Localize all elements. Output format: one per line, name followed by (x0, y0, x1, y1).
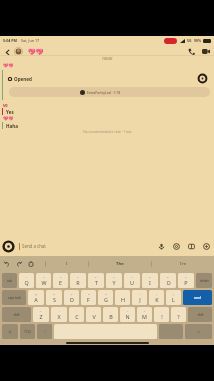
staticText: 5:04 PM (3, 38, 18, 43)
staticText: Z (39, 313, 43, 320)
staticText: 5G (187, 38, 192, 43)
button[interactable]: Audio call (186, 46, 197, 57)
staticText: L (172, 296, 175, 303)
staticText: Opened (14, 76, 32, 82)
button[interactable]: EetraParleyLad · 1:18 (9, 87, 210, 97)
staticText: M (142, 313, 147, 320)
button[interactable]: tab (2, 273, 17, 288)
staticText: V (92, 313, 96, 320)
staticText: : (93, 309, 94, 312)
staticText: ? (177, 313, 180, 320)
button[interactable]: I (46, 256, 88, 272)
button[interactable]: Yes (6, 108, 14, 115)
button[interactable]: Gallery (186, 241, 196, 251)
staticText: The (116, 261, 124, 267)
button[interactable]: Opened (8, 76, 32, 82)
button[interactable]: Redo (15, 260, 23, 268)
staticText: I (66, 261, 68, 267)
staticText: S (53, 296, 56, 303)
staticText: C (75, 313, 79, 320)
staticText: N (125, 313, 130, 320)
button[interactable]: ( (149, 290, 164, 305)
button[interactable]: 9 (160, 273, 176, 288)
staticText: & (105, 292, 107, 295)
staticText: ( (156, 292, 157, 295)
staticText: EetraParleyLad · 1:18 (87, 90, 121, 95)
button[interactable]: : (86, 307, 101, 322)
button[interactable]: 3 (53, 273, 68, 288)
button[interactable]: send (183, 290, 212, 305)
button[interactable]: 5 (88, 273, 104, 288)
button[interactable]: Camera (3, 241, 14, 252)
button[interactable]: # (46, 290, 62, 305)
button[interactable]: I'm (152, 256, 214, 272)
button[interactable]: @ (28, 290, 44, 305)
button[interactable]: 6 (106, 273, 122, 288)
button[interactable]: Reply with snap (198, 74, 207, 83)
button[interactable]: 7 (124, 273, 140, 288)
staticText: U (130, 279, 134, 286)
button[interactable]: - (115, 290, 130, 305)
staticText: ⌕ (44, 330, 46, 333)
button[interactable]: 0 (178, 273, 194, 288)
staticText: G (104, 296, 108, 303)
button[interactable]: ⌕ (37, 324, 52, 339)
staticText: send (194, 296, 201, 300)
staticText: $ (71, 292, 73, 295)
button[interactable]: % (81, 290, 96, 305)
button[interactable]: ? (137, 307, 152, 322)
staticText: Send a chat (22, 243, 46, 249)
button[interactable]: shift (2, 307, 31, 322)
staticText: 8 (149, 275, 151, 278)
staticText: shift (13, 313, 20, 317)
button[interactable]: 8 (142, 273, 158, 288)
button[interactable]: caps lock (2, 290, 26, 305)
button[interactable]: Stickers (171, 241, 181, 251)
button[interactable]: ) (166, 290, 181, 305)
button[interactable]: 2 (36, 273, 51, 288)
button[interactable]: & (98, 290, 113, 305)
button[interactable]: " (51, 307, 67, 322)
staticText: R (76, 279, 80, 286)
button[interactable]: Profile (14, 47, 23, 56)
button[interactable]: Undo (3, 260, 11, 268)
button[interactable]: + (132, 290, 147, 305)
button[interactable]: Video call (200, 46, 211, 57)
button[interactable]: ' (69, 307, 84, 322)
staticText: 7 (131, 275, 133, 278)
staticText: 9 (167, 275, 169, 278)
button[interactable]: The (89, 256, 151, 272)
button[interactable]: , (154, 307, 169, 322)
button[interactable]: . (171, 307, 186, 322)
staticText: H (121, 296, 125, 303)
staticText: Sat, Jun 17 (21, 38, 40, 43)
button[interactable]: / (120, 307, 135, 322)
staticText: ? (144, 309, 146, 312)
button[interactable]: shift (188, 307, 212, 322)
staticText: ) (173, 292, 174, 295)
staticText: 6 (113, 275, 115, 278)
button[interactable]: delete (196, 273, 212, 288)
button[interactable]: ☺ (2, 324, 18, 339)
staticText: tab (7, 279, 12, 283)
staticText: delete (200, 279, 209, 283)
button[interactable]: More options (201, 241, 211, 251)
button[interactable]: * (33, 307, 49, 322)
button[interactable]: $ (64, 290, 79, 305)
staticText: * (40, 309, 42, 312)
staticText: F (87, 296, 90, 303)
button[interactable]: Clipboard (27, 260, 35, 268)
staticText: Y (112, 279, 116, 286)
button[interactable]: 4 (70, 273, 86, 288)
button[interactable]: Voice note (156, 241, 166, 251)
button[interactable]: ; (103, 307, 118, 322)
button[interactable]: 1 (19, 273, 34, 288)
button[interactable]: Back (2, 47, 12, 57)
staticText: 💖💖 (3, 116, 14, 121)
button[interactable]: Haha (6, 122, 19, 129)
staticText: 1 (26, 275, 28, 278)
button[interactable]: ?123 (20, 324, 35, 339)
